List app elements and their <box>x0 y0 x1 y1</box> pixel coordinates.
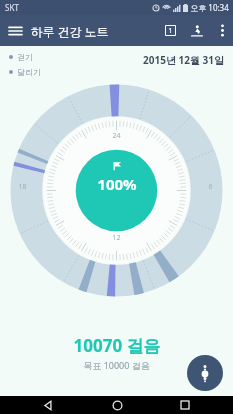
staticText: 걷기 <box>17 52 33 62</box>
staticText: 달리기 <box>17 67 41 77</box>
button[interactable]: Back <box>28 396 68 414</box>
staticText: 하루 건강 노트 <box>30 23 109 39</box>
staticText: 6 <box>208 182 213 192</box>
staticText: 2015년 12월 31일 <box>143 53 224 67</box>
button[interactable]: Home <box>97 396 137 414</box>
staticText: 1 <box>168 26 173 35</box>
staticText: 24 <box>112 131 121 141</box>
button[interactable]: More actions <box>187 355 223 391</box>
staticText: 목표 10000 걸음 <box>83 359 150 371</box>
staticText: 100% <box>97 174 137 194</box>
staticText: 10070 걸음 <box>73 334 161 357</box>
button[interactable]: Activity <box>183 15 211 46</box>
staticText: 18 <box>18 182 27 192</box>
staticText: 오후 10:34 <box>190 2 229 13</box>
staticText: 12 <box>112 233 121 243</box>
button[interactable]: Menu <box>0 15 30 46</box>
button[interactable]: Recent apps <box>165 396 205 414</box>
button[interactable]: Day <box>157 15 183 46</box>
staticText: SKT <box>5 2 19 13</box>
button[interactable]: More options <box>211 15 233 46</box>
